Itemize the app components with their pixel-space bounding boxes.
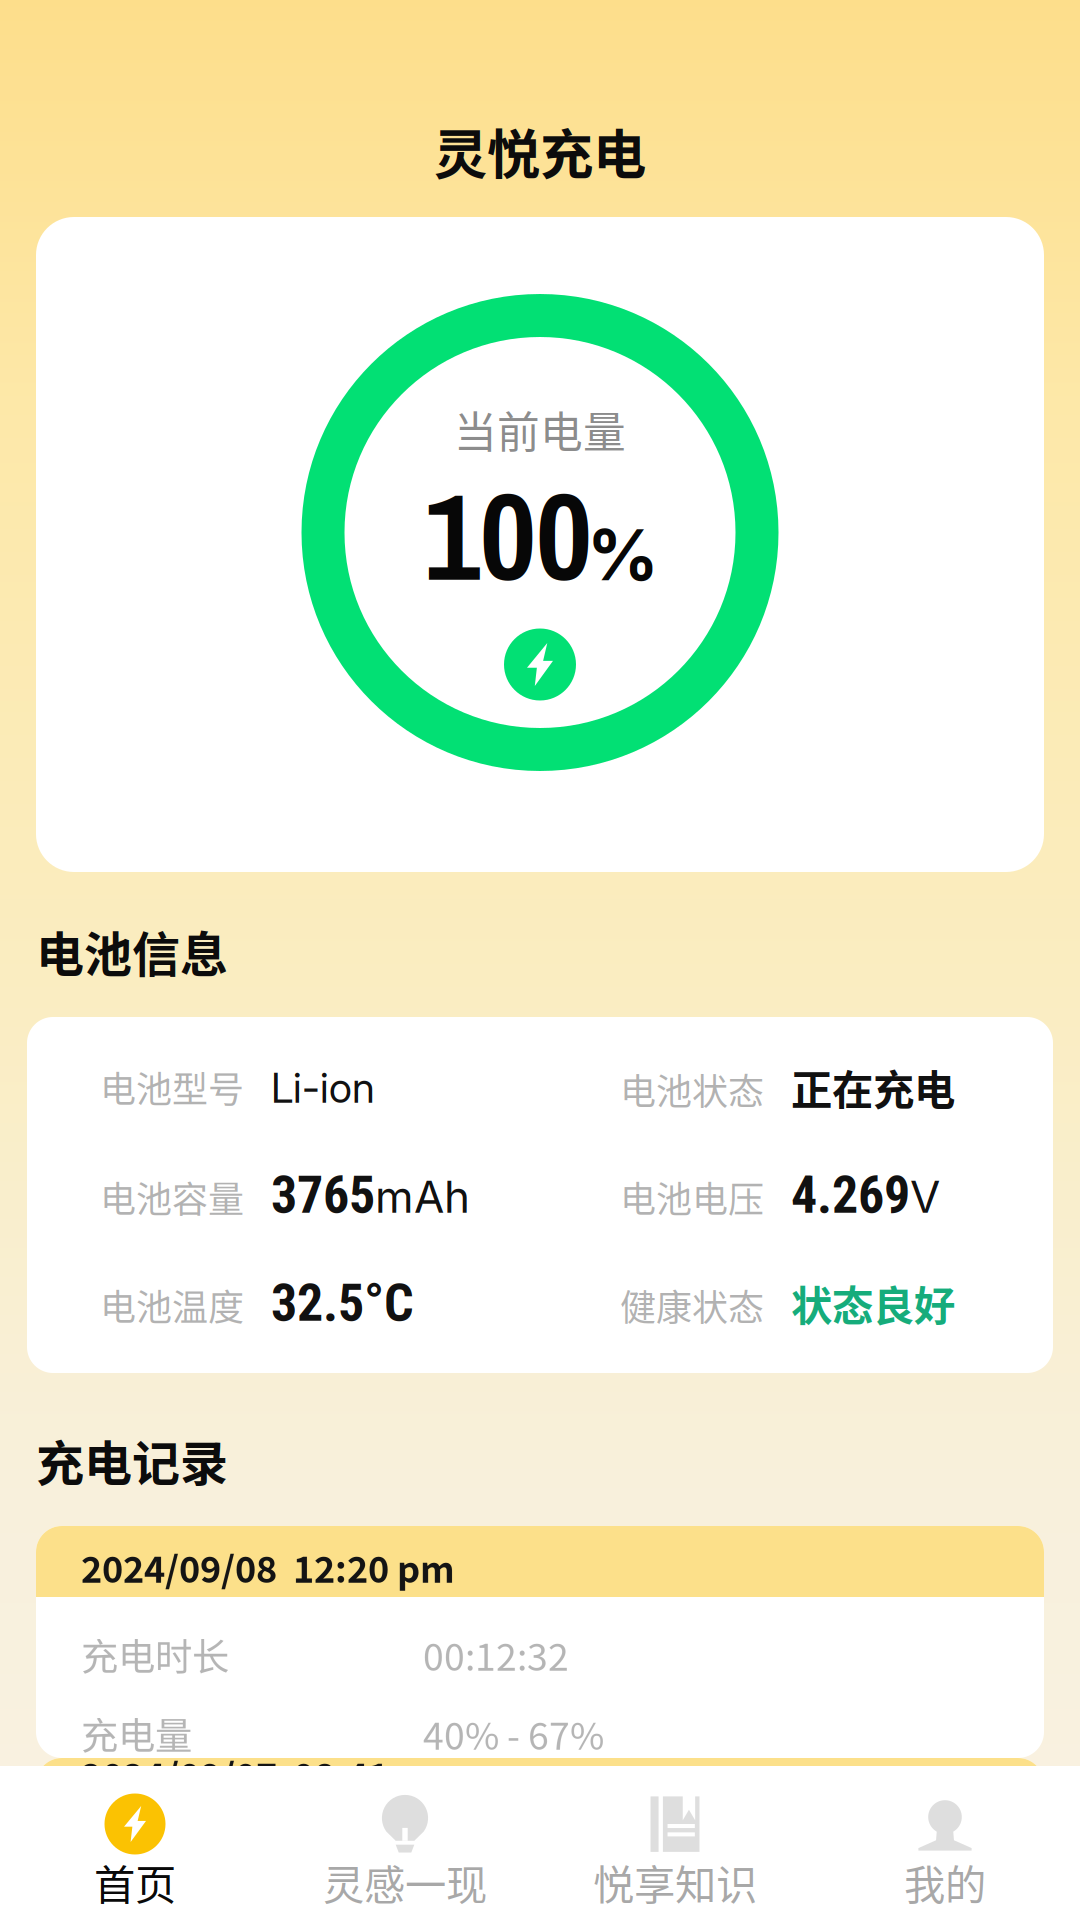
staticText: 充电记录 — [36, 1425, 228, 1495]
staticText: 首页 — [94, 1852, 176, 1912]
staticText: 32.5°C — [271, 1272, 414, 1333]
staticText: 电池型号 — [100, 1061, 244, 1113]
staticText: 100 — [424, 453, 592, 618]
staticText: 正在充电 — [791, 1057, 955, 1117]
staticText: mAh — [375, 1170, 470, 1223]
staticText: 悦享知识 — [593, 1852, 757, 1912]
staticText: 电池容量 — [100, 1171, 244, 1223]
staticText: 电池状态 — [620, 1063, 764, 1115]
button[interactable]: 我的 — [810, 1766, 1080, 1920]
button[interactable]: 悦享知识 — [540, 1766, 810, 1920]
staticText: 4.269 — [791, 1164, 910, 1225]
staticText: 电池温度 — [100, 1279, 244, 1331]
staticText: 充电时长 — [81, 1627, 229, 1682]
staticText: 充电时长 — [81, 1859, 229, 1914]
staticText: 灵悦充电 — [434, 112, 646, 190]
staticText: 00:38:05 — [423, 1859, 569, 1914]
staticText: 灵感一现 — [323, 1852, 487, 1912]
staticText: 健康状态 — [620, 1279, 764, 1331]
button[interactable]: 首页 — [0, 1766, 270, 1920]
staticText: 当前电量 — [454, 399, 626, 460]
staticText: 2024/09/08 12:20 pm — [81, 1541, 455, 1593]
staticText: Li-ion — [271, 1063, 375, 1113]
staticText: 3765 — [271, 1164, 375, 1225]
staticText: 充电量 — [81, 1706, 192, 1761]
staticText: 40% - 67% — [423, 1706, 604, 1761]
button[interactable]: 灵感一现 — [270, 1766, 540, 1920]
staticText: 2024/09/07 08:41 am — [81, 1748, 453, 1800]
staticText: 我的 — [904, 1852, 986, 1912]
staticText: 00:12:32 — [423, 1627, 569, 1682]
staticText: % — [587, 512, 659, 597]
staticText: V — [910, 1170, 940, 1223]
staticText: 电池电压 — [620, 1171, 764, 1223]
staticText: 状态良好 — [791, 1273, 955, 1333]
staticText: 电池信息 — [36, 916, 228, 986]
